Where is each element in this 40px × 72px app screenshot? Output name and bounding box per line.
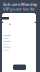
staticText: VIP guest list for <box>3 6 35 12</box>
staticText: Sub-zero Monday <box>3 1 37 7</box>
button[interactable]: Continue <box>13 64 26 70</box>
